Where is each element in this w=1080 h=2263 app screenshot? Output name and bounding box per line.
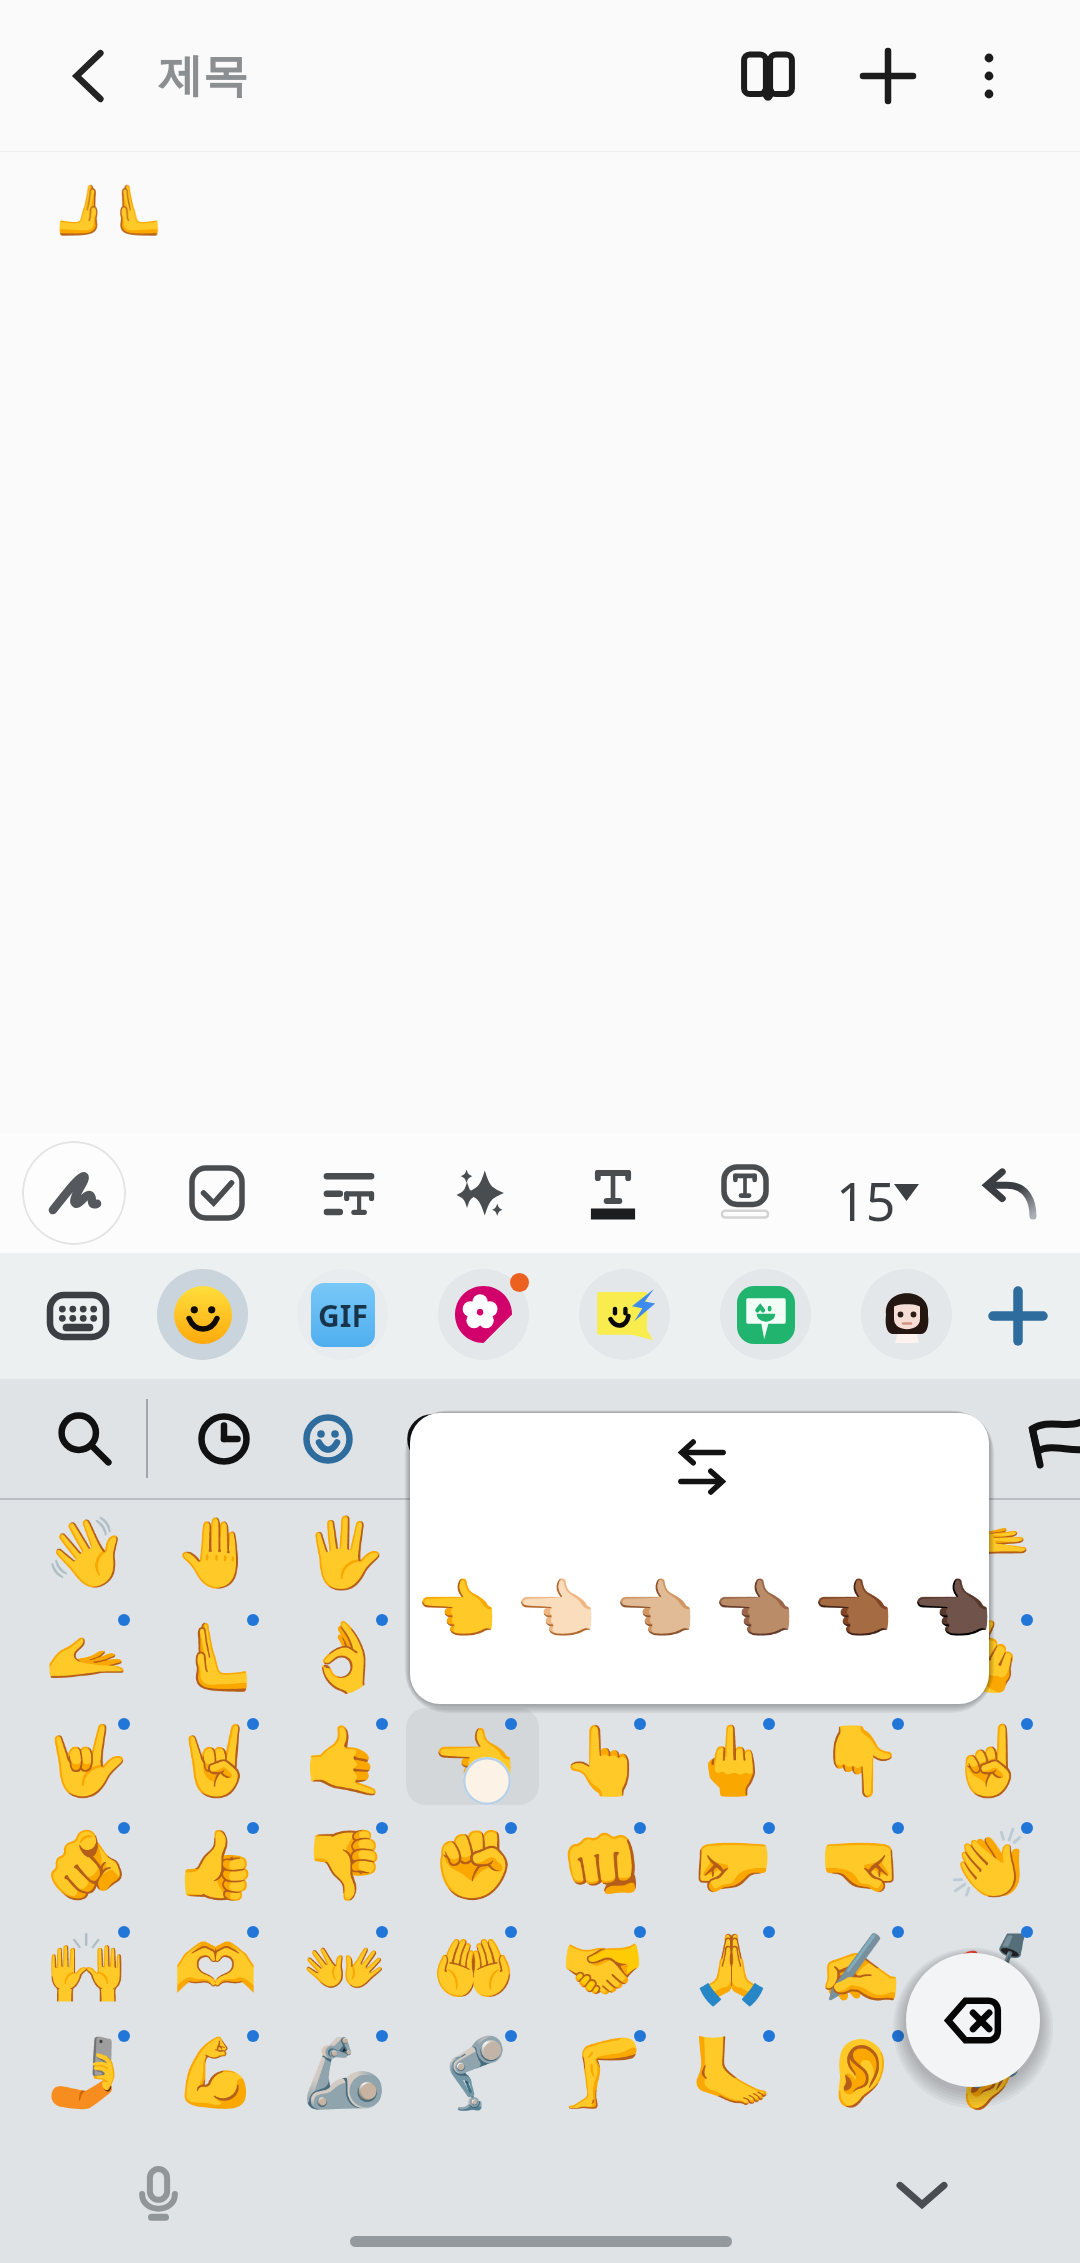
button[interactable]: 👐 (280, 1917, 408, 2021)
button[interactable]: 💪 (151, 2021, 279, 2125)
button[interactable]: 🤝 (538, 1917, 666, 2021)
button[interactable]: Handwriting (22, 1141, 126, 1245)
button[interactable]: 🖖 (538, 1501, 666, 1605)
button[interactable]: 🫳 (925, 1501, 1053, 1605)
button[interactable]: 👈 (410, 1562, 505, 1660)
staticText: 👇 (818, 1721, 903, 1801)
button[interactable]: Format option (167, 1143, 267, 1243)
button[interactable]: 🤚 (151, 1501, 279, 1605)
button[interactable]: 👈🏿 (902, 1562, 989, 1660)
button[interactable]: 🤏 (538, 1605, 666, 1709)
button[interactable]: 🖕 (667, 1709, 795, 1813)
button[interactable]: 🦶 (667, 2021, 795, 2125)
button[interactable]: Format option (958, 1143, 1058, 1243)
staticText: 💅 (947, 1929, 1032, 2009)
button[interactable]: Format option (430, 1143, 530, 1243)
button[interactable]: 🤘 (151, 1709, 279, 1813)
button[interactable]: 🫷 (151, 1605, 279, 1709)
staticText: 🫴 (44, 1617, 129, 1697)
staticText: 🤏 (560, 1617, 645, 1697)
button[interactable]: Reading mode (722, 29, 814, 121)
button[interactable]: 👌 (280, 1605, 408, 1709)
staticText: 🫷 (173, 1617, 258, 1697)
button[interactable]: 🫶 (151, 1917, 279, 2021)
button[interactable]: Sticker pack (579, 1269, 670, 1360)
button[interactable]: 👎 (280, 1813, 408, 1917)
button[interactable]: 🫵 (22, 1813, 150, 1917)
button[interactable]: 👈🏽 (704, 1562, 802, 1660)
button[interactable]: 🦻 (925, 2021, 1053, 2125)
button[interactable]: Font size (826, 1147, 936, 1239)
button[interactable]: 🦿 (409, 2021, 537, 2125)
button[interactable]: Format option (695, 1143, 795, 1243)
button[interactable]: 💅 (925, 1917, 1053, 2021)
button[interactable]: 👋 (22, 1501, 150, 1605)
button[interactable]: 👈🏼 (605, 1562, 703, 1660)
button[interactable]: Add sticker pack (968, 1266, 1068, 1366)
button[interactable]: 👆 (538, 1709, 666, 1813)
button[interactable]: Smileys (279, 1390, 377, 1488)
staticText: 🙏 (689, 1929, 774, 2009)
button[interactable]: ✌ (667, 1605, 795, 1709)
button[interactable]: 👂 (796, 2021, 924, 2125)
button[interactable]: 🖐 (280, 1501, 408, 1605)
button[interactable]: Format option (563, 1143, 663, 1243)
button[interactable]: 🫲 (796, 1501, 924, 1605)
button[interactable]: Add (842, 30, 934, 122)
button[interactable]: 🤙 (280, 1709, 408, 1813)
button[interactable]: 👈🏾 (803, 1562, 901, 1660)
staticText: 🖖 (560, 1513, 645, 1593)
staticText: 👈🏿 (910, 1572, 989, 1650)
button[interactable]: 👏 (925, 1813, 1053, 1917)
button[interactable]: People (383, 1390, 481, 1488)
button[interactable]: Format option (299, 1143, 399, 1243)
button[interactable]: Voice input (108, 2144, 208, 2244)
button[interactable]: 🦾 (280, 2021, 408, 2125)
staticText: 🤚 (173, 1513, 258, 1593)
button[interactable]: Flags (1026, 1415, 1080, 1465)
button[interactable]: Keyboard (28, 1266, 128, 1366)
button[interactable]: Sticker pack (297, 1269, 388, 1360)
button[interactable]: 🫰 (925, 1605, 1053, 1709)
staticText: 🫳 (947, 1513, 1032, 1593)
button[interactable]: Backspace (906, 1953, 1040, 2087)
button[interactable]: 🤜 (796, 1813, 924, 1917)
button[interactable]: Recent emoji (175, 1390, 273, 1488)
staticText: ✍ (818, 1929, 903, 2009)
button[interactable]: 🦵 (538, 2021, 666, 2125)
button[interactable]: More options (943, 30, 1035, 122)
button[interactable]: 제목 (150, 34, 280, 118)
button[interactable]: 👇 (796, 1709, 924, 1813)
button[interactable]: 🫱 (667, 1501, 795, 1605)
button[interactable]: ☝ (925, 1709, 1053, 1813)
button[interactable]: 🤛 (667, 1813, 795, 1917)
button[interactable]: 🤟 (22, 1709, 150, 1813)
button[interactable]: Back (42, 30, 134, 122)
button[interactable]: Sticker pack (438, 1269, 529, 1360)
staticText: 👊 (560, 1825, 645, 1905)
button[interactable]: 👍 (151, 1813, 279, 1917)
button[interactable]: 👈🏻 (506, 1562, 604, 1660)
staticText: 🦾 (302, 2033, 387, 2113)
button[interactable]: Sticker pack (861, 1269, 952, 1360)
button[interactable]: Sticker pack (157, 1269, 248, 1360)
button[interactable]: 👈 (409, 1709, 537, 1813)
button[interactable]: Hide keyboard (872, 2145, 972, 2245)
staticText: 15 (836, 1165, 896, 1236)
button[interactable]: 🤌 (409, 1605, 537, 1709)
button[interactable]: 🫴 (22, 1605, 150, 1709)
button[interactable]: 🙌 (22, 1917, 150, 2021)
button[interactable]: 🤲 (409, 1917, 537, 2021)
button[interactable]: ✋ (409, 1501, 537, 1605)
staticText: 🤌 (431, 1617, 516, 1697)
button[interactable]: ✍ (796, 1917, 924, 2021)
button[interactable]: ✊ (409, 1813, 537, 1917)
staticText: 제목 (158, 48, 248, 105)
button[interactable]: 🤳 (22, 2021, 150, 2125)
button[interactable]: 🤞 (796, 1605, 924, 1709)
button[interactable]: Sticker pack (720, 1269, 811, 1360)
button[interactable]: 👊 (538, 1813, 666, 1917)
button[interactable]: Search emoji (36, 1390, 134, 1488)
button[interactable]: 🙏 (667, 1917, 795, 2021)
staticText: 🫱 (689, 1513, 774, 1593)
